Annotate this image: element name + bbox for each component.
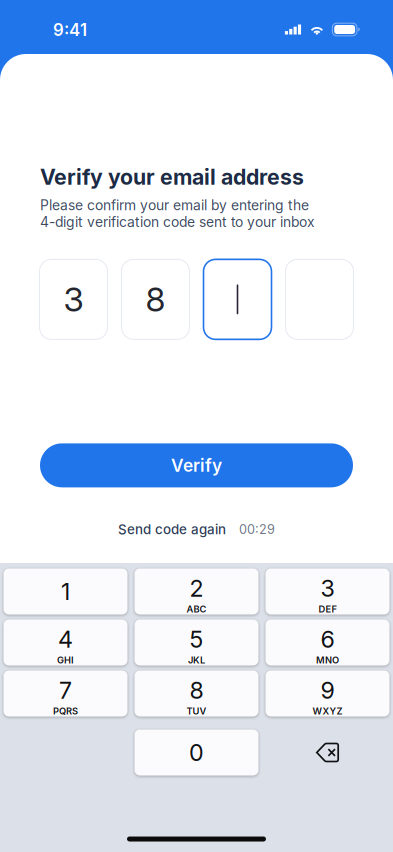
- staticText: 9:41: [53, 20, 87, 40]
- staticText: 3: [320, 574, 334, 602]
- staticText: 8: [189, 676, 203, 704]
- button[interactable]: 1: [3, 568, 127, 614]
- staticText: JKL: [188, 654, 205, 666]
- button[interactable]: 0: [134, 729, 258, 775]
- staticText: ABC: [186, 603, 206, 615]
- staticText: Please confirm your email by entering th…: [40, 197, 315, 230]
- staticText: PQRS: [53, 705, 78, 717]
- button[interactable]: Empty digit: [203, 259, 271, 339]
- button[interactable]: Digit 8: [121, 259, 189, 339]
- staticText: 5: [189, 625, 203, 653]
- button[interactable]: 5: [134, 619, 258, 665]
- staticText: 4: [58, 625, 73, 653]
- staticText: GHI: [57, 654, 74, 666]
- staticText: Verify your email address: [40, 164, 304, 190]
- staticText: 3: [63, 279, 83, 319]
- button[interactable]: Send code again: [118, 521, 226, 537]
- button[interactable]: Digit 3: [39, 259, 107, 339]
- staticText: Send code again: [118, 521, 226, 537]
- button[interactable]: 9: [265, 670, 389, 716]
- staticText: TUV: [186, 705, 206, 717]
- button[interactable]: 8: [134, 670, 258, 716]
- staticText: Verify: [171, 455, 222, 476]
- staticText: 0: [189, 738, 204, 767]
- button[interactable]: 6: [265, 619, 389, 665]
- staticText: 7: [59, 676, 72, 704]
- button[interactable]: 2: [134, 568, 258, 614]
- staticText: WXYZ: [312, 705, 342, 717]
- staticText: 8: [145, 279, 165, 319]
- button[interactable]: Delete: [265, 729, 389, 775]
- staticText: MNO: [316, 654, 339, 666]
- button[interactable]: Verify: [40, 443, 353, 487]
- button[interactable]: 3: [265, 568, 389, 614]
- staticText: 2: [189, 574, 203, 602]
- staticText: 9: [320, 676, 334, 704]
- staticText: DEF: [318, 603, 336, 615]
- button[interactable]: 4: [3, 619, 127, 665]
- button[interactable]: Empty digit: [285, 259, 353, 339]
- staticText: 6: [320, 625, 334, 653]
- button[interactable]: 7: [3, 670, 127, 716]
- staticText: 00:29: [239, 522, 275, 537]
- staticText: 1: [61, 577, 70, 606]
